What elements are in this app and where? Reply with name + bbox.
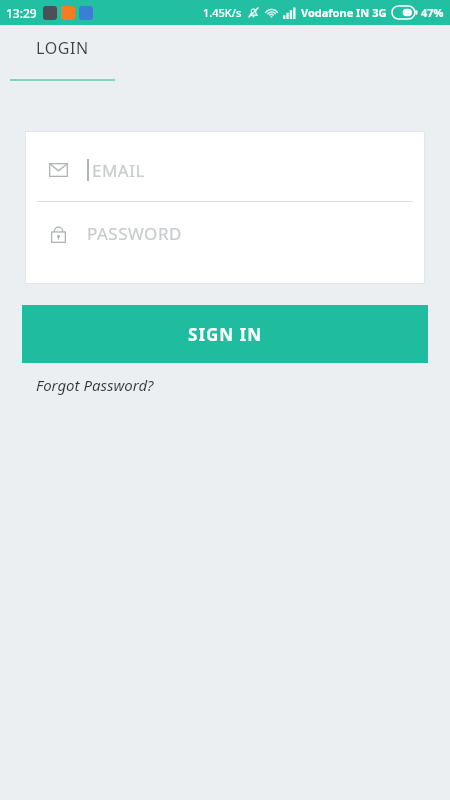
- staticText: LOGIN: [36, 37, 89, 59]
- staticText: Vodafone IN 3G: [301, 5, 387, 20]
- staticText: 47%: [421, 5, 444, 20]
- button[interactable]: LOGIN: [10, 37, 115, 81]
- staticText: 13:29: [6, 5, 37, 21]
- button[interactable]: SIGN IN: [22, 305, 428, 363]
- other: Email: [49, 163, 68, 177]
- staticText: Forgot Password?: [36, 375, 154, 395]
- staticText: PASSWORD: [87, 222, 182, 245]
- button[interactable]: Password: [25, 216, 425, 250]
- button[interactable]: Forgot Password?: [36, 375, 154, 395]
- other: Password: [51, 224, 66, 243]
- button[interactable]: Email: [25, 153, 425, 187]
- staticText: 1.45K/s: [203, 5, 242, 20]
- staticText: EMAIL: [92, 159, 145, 182]
- staticText: SIGN IN: [188, 323, 262, 346]
